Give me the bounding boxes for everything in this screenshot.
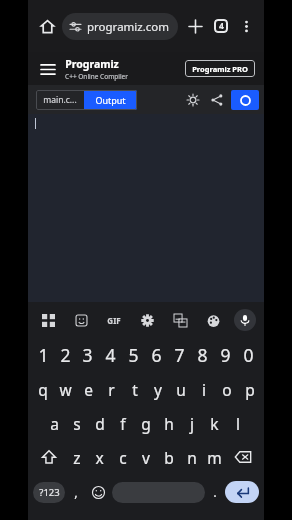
staticText: c	[119, 447, 127, 468]
button[interactable]: Enter	[225, 481, 259, 503]
staticText: b	[164, 447, 174, 468]
button[interactable]: Shift	[32, 440, 65, 474]
button[interactable]: Menu	[37, 58, 59, 80]
button[interactable]: h	[157, 406, 180, 440]
button[interactable]: Translate	[168, 308, 192, 332]
button[interactable]: g	[134, 406, 157, 440]
button[interactable]: u	[169, 372, 192, 406]
staticText: 4	[219, 20, 224, 32]
button[interactable]: n	[180, 440, 203, 474]
button[interactable]: Share	[206, 89, 228, 111]
button[interactable]: j	[180, 406, 203, 440]
button[interactable]: More options	[234, 14, 258, 38]
staticText: a	[50, 413, 59, 434]
staticText: GIF	[107, 315, 121, 326]
button[interactable]: a	[43, 406, 65, 440]
button[interactable]: o	[215, 372, 238, 406]
button[interactable]: ?123	[33, 482, 65, 503]
staticText: 8	[197, 343, 208, 367]
button[interactable]: 7	[168, 338, 191, 372]
button[interactable]: v	[134, 440, 157, 474]
button[interactable]: Output	[84, 90, 137, 110]
staticText: p	[245, 379, 255, 400]
button[interactable]: programiz.com/cpp-p	[62, 13, 178, 40]
staticText: y	[154, 379, 162, 400]
staticText: n	[187, 447, 197, 468]
button[interactable]: 2	[54, 338, 76, 372]
button[interactable]: Programiz PRO	[185, 60, 255, 77]
staticText: w	[59, 379, 72, 400]
staticText: C++ Online Compiler	[65, 72, 128, 81]
button[interactable]: x	[88, 440, 111, 474]
staticText: o	[222, 379, 232, 400]
button[interactable]: GIF	[102, 308, 126, 332]
staticText: j	[190, 413, 194, 434]
button[interactable]: 3	[76, 338, 99, 372]
button[interactable]: r	[100, 372, 123, 406]
button[interactable]: Theme brightness	[182, 89, 204, 111]
staticText: d	[95, 413, 105, 434]
staticText: 0	[243, 343, 254, 367]
button[interactable]: b	[157, 440, 180, 474]
button[interactable]: Emoji	[87, 481, 109, 503]
staticText: 1	[38, 343, 49, 367]
button[interactable]: s	[65, 406, 88, 440]
staticText: ?123	[39, 486, 60, 499]
button[interactable]: Home	[34, 13, 60, 39]
button[interactable]: New tab	[182, 13, 208, 39]
button[interactable]: l	[226, 406, 249, 440]
button[interactable]: d	[88, 406, 111, 440]
staticText: 5	[128, 343, 139, 367]
staticText: 3	[82, 343, 93, 367]
staticText: programiz.com/cpp-p	[86, 19, 170, 35]
button[interactable]: 5	[122, 338, 145, 372]
button[interactable]: c	[111, 440, 134, 474]
button[interactable]: m	[203, 440, 226, 474]
button[interactable]: main.c...	[36, 90, 84, 110]
staticText: Programiz	[65, 57, 119, 71]
button[interactable]: Themes	[201, 308, 225, 332]
button[interactable]: Clipboard	[36, 308, 60, 332]
staticText: f	[120, 413, 126, 434]
button[interactable]: Backspace	[226, 440, 260, 474]
button[interactable]: t	[123, 372, 146, 406]
button[interactable]: Tabs: 4 open	[208, 13, 234, 39]
button[interactable]: q	[31, 372, 54, 406]
button[interactable]: w	[54, 372, 77, 406]
button[interactable]: z	[65, 440, 88, 474]
button[interactable]: 8	[191, 338, 214, 372]
staticText: z	[73, 447, 81, 468]
staticText: Programiz PRO	[192, 64, 248, 74]
button[interactable]: k	[203, 406, 226, 440]
staticText: r	[108, 379, 115, 400]
staticText: l	[236, 413, 240, 434]
button[interactable]: Stickers	[69, 308, 93, 332]
button[interactable]: .	[205, 474, 225, 510]
button[interactable]: 1	[32, 338, 54, 372]
button[interactable]: Settings	[135, 308, 159, 332]
staticText: ,	[74, 483, 78, 501]
staticText: 9	[220, 343, 231, 367]
button[interactable]: Run	[231, 90, 259, 110]
staticText: 6	[151, 343, 162, 367]
button[interactable]: f	[111, 406, 134, 440]
button[interactable]: e	[77, 372, 100, 406]
button[interactable]: Space	[112, 482, 205, 503]
button[interactable]: Voice input	[234, 309, 256, 331]
button[interactable]: y	[146, 372, 169, 406]
button[interactable]: 9	[214, 338, 237, 372]
staticText: Output	[95, 94, 126, 106]
staticText: t	[132, 379, 138, 400]
staticText: g	[141, 413, 151, 434]
button[interactable]: p	[238, 372, 261, 406]
button[interactable]: i	[192, 372, 215, 406]
staticText: h	[164, 413, 174, 434]
staticText: x	[95, 447, 104, 468]
button[interactable]: 6	[145, 338, 168, 372]
button[interactable]: 4	[99, 338, 122, 372]
button[interactable]: 0	[237, 338, 260, 372]
button[interactable]: ,	[65, 474, 87, 510]
staticText: main.c...	[43, 94, 77, 106]
staticText: 7	[174, 343, 185, 367]
